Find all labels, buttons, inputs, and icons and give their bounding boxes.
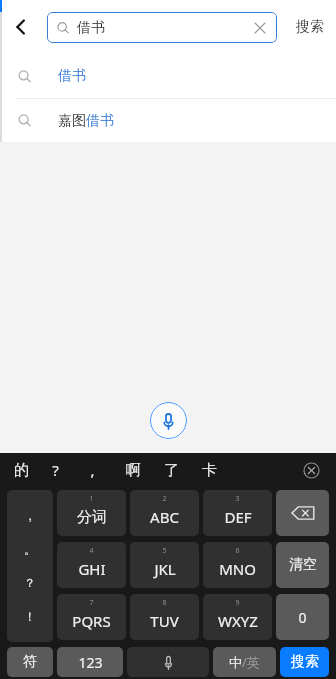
button[interactable]: 2 xyxy=(130,490,199,536)
button[interactable]: Close keyboard panel xyxy=(300,459,322,481)
staticText: 5 xyxy=(162,546,167,556)
staticText: ！ xyxy=(24,609,36,624)
button[interactable]: 9 xyxy=(203,594,272,640)
button[interactable]: 啊 xyxy=(126,455,164,485)
button[interactable]: 搜索 xyxy=(280,647,329,677)
staticText: TUV xyxy=(150,611,179,631)
button[interactable]: 符 xyxy=(7,647,53,677)
staticText: 0 xyxy=(298,608,307,627)
button[interactable]: Space / voice xyxy=(127,647,209,677)
staticText: 借书 xyxy=(77,19,105,37)
button[interactable]: ? xyxy=(52,455,90,485)
staticText: 的 xyxy=(14,461,29,480)
button[interactable]: 5 xyxy=(130,542,199,588)
staticText: 清空 xyxy=(289,556,317,574)
button[interactable]: 中/英 xyxy=(213,647,276,677)
button[interactable]: 嘉图借书 xyxy=(0,99,336,142)
button[interactable]: 了 xyxy=(164,455,202,485)
staticText: MNO xyxy=(219,559,256,579)
staticText: 6 xyxy=(235,546,240,556)
staticText: ABC xyxy=(150,507,179,527)
staticText: ? xyxy=(52,460,59,480)
staticText: WXYZ xyxy=(218,611,258,631)
staticText: 分词 xyxy=(77,508,107,527)
button[interactable]: 卡 xyxy=(202,455,240,485)
button[interactable]: 7 xyxy=(57,594,126,640)
button[interactable]: Voice input xyxy=(150,402,187,439)
staticText: 嘉图借书 xyxy=(58,112,114,130)
button[interactable]: 1 xyxy=(57,490,126,536)
staticText: ， xyxy=(24,508,36,523)
staticText: 7 xyxy=(89,598,94,608)
staticText: 1 xyxy=(89,494,94,504)
button[interactable]: 4 xyxy=(57,542,126,588)
staticText: 中/英 xyxy=(229,653,260,671)
staticText: 9 xyxy=(235,598,240,608)
staticText: 符 xyxy=(23,653,37,671)
button[interactable]: Backspace xyxy=(276,490,329,536)
staticText: 。 xyxy=(24,542,36,557)
staticText: 123 xyxy=(78,653,103,672)
staticText: DEF xyxy=(224,507,252,527)
button[interactable]: 搜索 xyxy=(283,0,336,54)
button[interactable]: Clear xyxy=(252,20,268,36)
button[interactable]: 清空 xyxy=(276,542,329,588)
staticText: 搜索 xyxy=(296,18,324,36)
staticText: ？ xyxy=(24,575,36,590)
button[interactable]: Back xyxy=(0,0,42,54)
button[interactable]: 6 xyxy=(203,542,272,588)
staticText: 卡 xyxy=(202,461,217,480)
staticText: , xyxy=(90,460,95,480)
staticText: JKL xyxy=(154,559,176,579)
button[interactable]: 0 xyxy=(276,594,329,640)
button[interactable]: 借书 xyxy=(47,12,277,43)
button[interactable]: 3 xyxy=(203,490,272,536)
staticText: PQRS xyxy=(72,611,111,631)
staticText: 借书 xyxy=(58,67,86,85)
staticText: 4 xyxy=(89,546,94,556)
staticText: 3 xyxy=(235,494,240,504)
staticText: 2 xyxy=(162,494,167,504)
staticText: 了 xyxy=(164,461,179,480)
staticText: 啊 xyxy=(126,461,141,480)
staticText: GHI xyxy=(78,559,106,579)
button[interactable]: 借书 xyxy=(0,54,336,98)
button[interactable]: 的 xyxy=(14,455,52,485)
button[interactable]: , xyxy=(90,455,126,485)
staticText: 8 xyxy=(162,598,167,608)
staticText: 搜索 xyxy=(291,653,319,671)
button[interactable]: 8 xyxy=(130,594,199,640)
button[interactable]: 123 xyxy=(57,647,123,677)
button[interactable]: ， xyxy=(7,490,53,642)
